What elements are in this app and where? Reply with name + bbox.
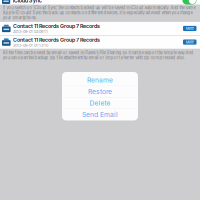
staticText: iCloud Sync <box>13 0 42 4</box>
staticText: Restore <box>88 88 112 96</box>
staticText: Rename <box>87 76 113 84</box>
button[interactable]: Send Email <box>62 109 138 120</box>
staticText: Contact 11 Records Group 7 Records <box>13 23 100 29</box>
button[interactable]: Delete <box>62 97 138 109</box>
staticText: If you switch on 'iCloud Sync',the conta… <box>2 5 195 20</box>
staticText: Send Email <box>82 110 118 119</box>
button[interactable]: Contact 11 Records Group 7 Records <box>0 35 200 49</box>
button[interactable]: Contact 11 Records Group 7 Records <box>0 22 200 35</box>
staticText: 2013-09-01 03:09:11 <box>13 29 48 34</box>
button[interactable]: Restore <box>62 86 138 97</box>
staticText: Contact 11 Records Group 7 Records <box>13 36 100 43</box>
button[interactable]: iCloud Sync <box>0 0 200 4</box>
staticText: More <box>186 26 194 31</box>
staticText: More <box>186 40 194 44</box>
staticText: All the files can be send by email or sa… <box>2 50 193 60</box>
staticText: 2013-09-01 01:13:10 <box>13 43 48 48</box>
button[interactable]: Rename <box>62 75 138 86</box>
staticText: Delete <box>89 99 110 107</box>
